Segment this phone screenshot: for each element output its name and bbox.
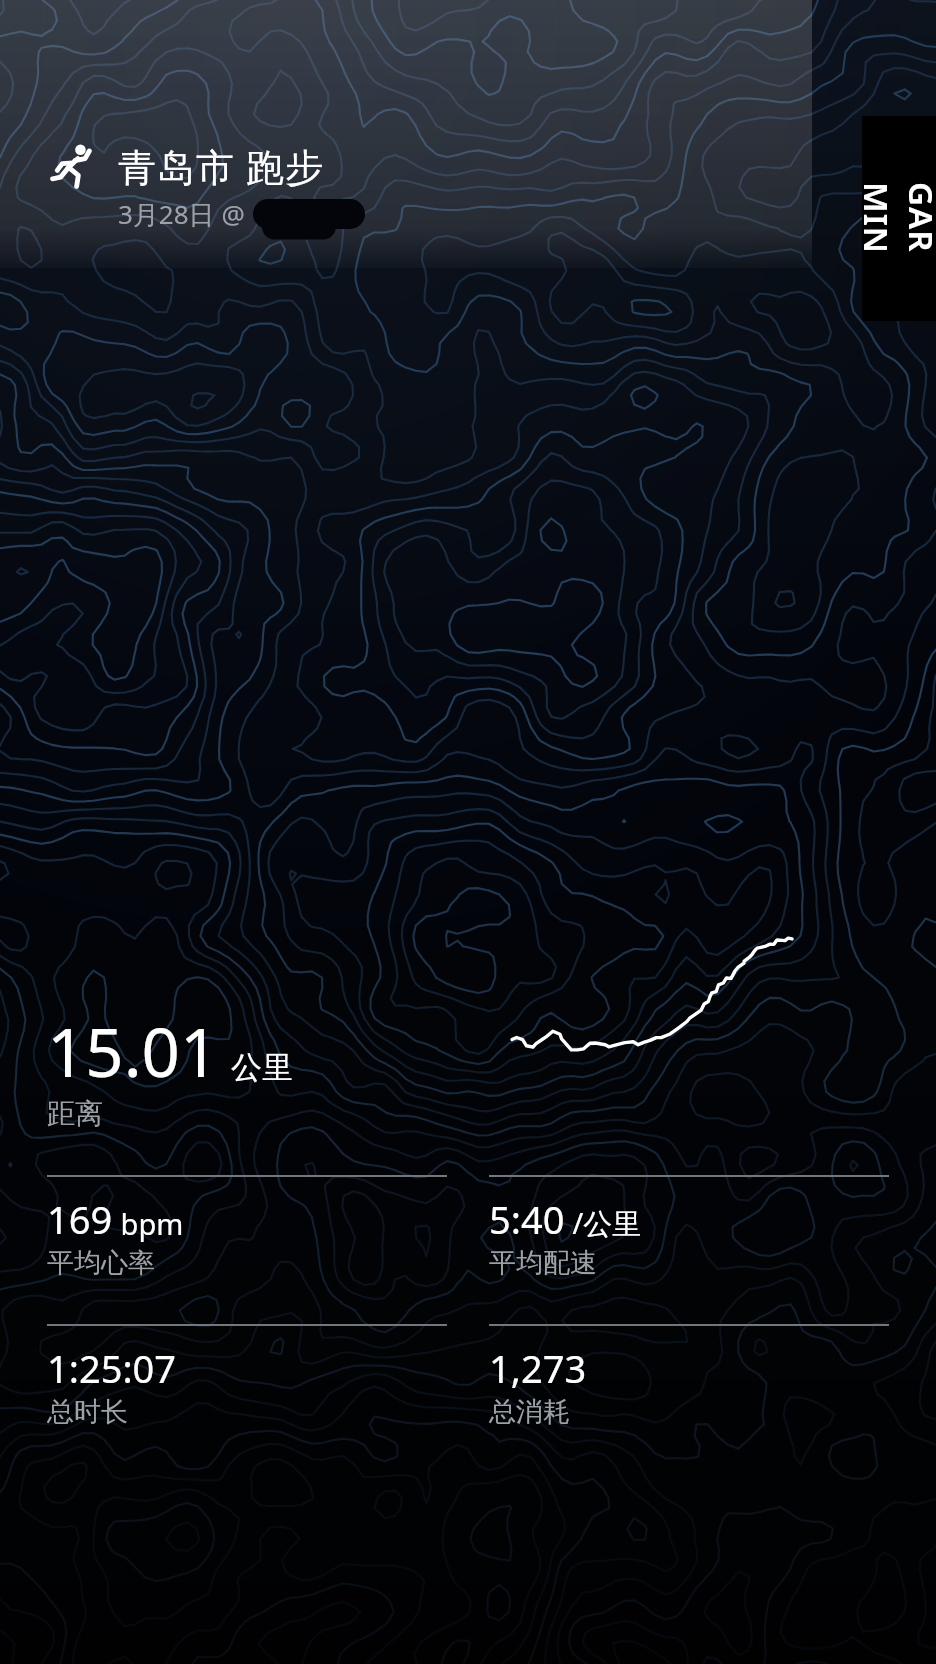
staticText: 总时长 (47, 1395, 128, 1429)
staticText: 15.01 (47, 1005, 219, 1096)
button[interactable]: Running activity (48, 140, 324, 192)
staticText: bpm (113, 1204, 184, 1243)
staticText: 1,273 (489, 1342, 587, 1394)
staticText: 总消耗 (489, 1395, 570, 1429)
button[interactable]: 15.01 (47, 1005, 293, 1096)
staticText: GARMIN (854, 182, 936, 256)
staticText: 平均心率 (47, 1246, 155, 1280)
staticText: 青岛市 跑步 (118, 140, 324, 192)
staticText: 5:40 (489, 1193, 565, 1245)
other: Running activity (48, 142, 96, 190)
staticText: 平均配速 (489, 1246, 597, 1280)
staticText: 1:25:07 (47, 1342, 177, 1394)
other: Route map (512, 938, 794, 1056)
button[interactable]: 5:40 (489, 1175, 889, 1280)
staticText: 169 (47, 1193, 113, 1245)
button[interactable]: 1,273 (489, 1324, 889, 1429)
staticText: /公里 (565, 1203, 642, 1243)
button[interactable]: 169 (47, 1175, 447, 1280)
staticText: 3月28日 @ (118, 196, 245, 232)
button[interactable]: Garmin (862, 116, 936, 321)
staticText: 距离 (47, 1096, 103, 1131)
button[interactable]: 1:25:07 (47, 1324, 447, 1429)
staticText: 公里 (231, 1048, 293, 1087)
